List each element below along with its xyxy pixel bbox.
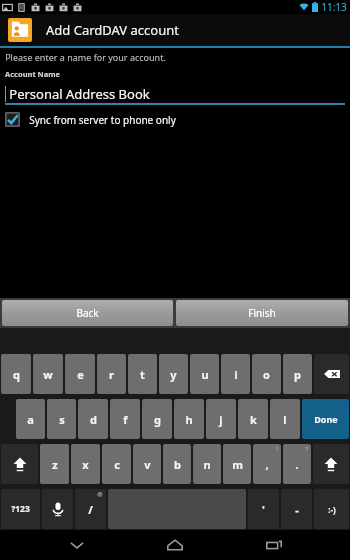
staticText: i [234,367,238,382]
staticText: w [43,367,53,382]
button[interactable]: - [281,489,312,529]
staticText: Add CardDAV account [46,21,179,39]
button[interactable]: t [128,354,157,394]
button[interactable]: l [270,399,300,439]
button[interactable]: Recents [252,530,296,560]
staticText: . [295,457,299,472]
staticText: l [283,412,287,427]
button[interactable]: d [78,399,108,439]
button[interactable]: c [102,444,131,484]
staticText: z [52,457,58,472]
button[interactable]: / [75,489,106,529]
staticText: f [123,412,128,427]
staticText: Sync from server to phone only [29,113,176,127]
button[interactable]: z [40,444,69,484]
staticText: :-) [328,504,336,515]
staticText: y [170,367,177,382]
staticText: b [174,457,181,472]
staticText: q [13,367,20,382]
button[interactable]: p [283,354,312,394]
button[interactable]: Shift [313,444,349,484]
staticText: d [90,412,97,427]
staticText: / [88,502,93,517]
button[interactable]: a [16,399,45,439]
button[interactable]: . [283,444,311,484]
staticText: u [201,367,209,382]
staticText: ? [305,445,308,453]
staticText: e [77,367,84,382]
button[interactable]: n [193,444,221,484]
button[interactable]: m [223,444,251,484]
button[interactable]: v [133,444,161,484]
button[interactable]: Backspace [314,354,349,394]
staticText: 11:13 [321,0,347,14]
staticText: k [250,412,257,427]
button[interactable]: x [71,444,100,484]
staticText: c [114,457,120,472]
button[interactable]: f [110,399,140,439]
button[interactable]: r [97,354,126,394]
staticText: j [219,412,223,427]
staticText: m [232,457,243,472]
staticText: v [144,457,151,472]
staticText: - [295,502,299,517]
staticText: , [265,457,269,472]
button[interactable]: s [47,399,76,439]
staticText: o [263,367,270,382]
staticText: Please enter a name for your account. [5,51,166,63]
button[interactable]: Personal Address Book [5,83,345,105]
button[interactable]: , [253,444,281,484]
button[interactable]: k [238,399,268,439]
staticText: Personal Address Book [9,85,150,103]
button[interactable]: e [65,354,95,394]
button[interactable]: Back [2,300,173,326]
staticText: a [27,412,34,427]
button[interactable]: Sync from server to phone only [5,112,350,127]
button[interactable]: q [1,354,31,394]
button[interactable]: Home [153,530,197,560]
button[interactable]: o [252,354,281,394]
staticText: Finish [248,306,276,320]
button[interactable]: Finish [176,300,348,326]
staticText: t [140,367,145,382]
button[interactable]: Hide keyboard [55,530,99,560]
staticText: ' [262,502,265,517]
staticText: p [294,367,301,382]
button[interactable]: Voice input [42,489,73,529]
button[interactable]: w [33,354,63,394]
staticText: r [109,367,114,382]
staticText: Account Name [5,69,60,79]
button[interactable]: Shift [1,444,38,484]
button[interactable]: y [159,354,188,394]
staticText: ?123 [11,503,30,515]
staticText: x [82,457,89,472]
staticText: n [203,457,211,472]
staticText: s [59,412,65,427]
button[interactable]: u [190,354,219,394]
staticText: ! [276,445,278,453]
button[interactable]: j [206,399,236,439]
button[interactable]: g [142,399,172,439]
button[interactable]: Done [302,399,349,439]
button[interactable]: Symbols [1,489,40,529]
staticText: g [154,412,161,427]
staticText: h [185,412,193,427]
staticText: Back [76,306,99,320]
button[interactable]: b [163,444,191,484]
button[interactable]: :-) [314,489,349,529]
staticText: @ [97,490,103,498]
staticText: Done [314,413,338,425]
button[interactable]: h [174,399,204,439]
button[interactable]: ' [248,489,279,529]
button[interactable]: i [221,354,250,394]
